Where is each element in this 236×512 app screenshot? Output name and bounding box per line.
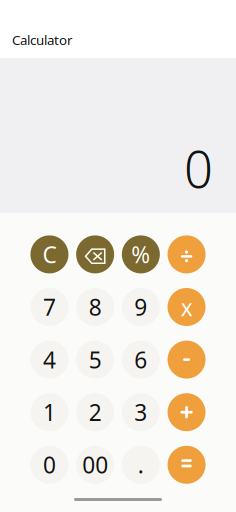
staticText: X bbox=[181, 297, 192, 321]
staticText: . bbox=[138, 450, 144, 480]
button[interactable]: X bbox=[168, 288, 206, 326]
staticText: 5 bbox=[89, 344, 102, 375]
button[interactable]: Backspace bbox=[76, 235, 114, 273]
button[interactable]: 00 bbox=[76, 446, 114, 484]
button[interactable]: Equals bbox=[168, 446, 206, 484]
staticText: 4 bbox=[43, 344, 56, 375]
button[interactable]: 6 bbox=[122, 341, 160, 379]
staticText: 8 bbox=[89, 292, 102, 322]
staticText: 7 bbox=[43, 292, 56, 322]
staticText: % bbox=[131, 239, 150, 269]
staticText: 1 bbox=[43, 397, 56, 427]
button[interactable]: 0 bbox=[30, 446, 68, 484]
button[interactable]: Plus bbox=[168, 393, 206, 431]
staticText: C bbox=[42, 239, 56, 269]
staticText: 0 bbox=[43, 450, 56, 480]
button[interactable]: C bbox=[30, 235, 68, 273]
button[interactable]: % bbox=[122, 235, 160, 273]
button[interactable]: 2 bbox=[76, 393, 114, 431]
button[interactable]: 4 bbox=[30, 341, 68, 379]
button[interactable]: Divide bbox=[168, 235, 206, 273]
button[interactable]: 7 bbox=[30, 288, 68, 326]
button[interactable]: 9 bbox=[122, 288, 160, 326]
button[interactable]: Minus bbox=[168, 341, 206, 379]
button[interactable]: 3 bbox=[122, 393, 160, 431]
staticText: Calculator bbox=[12, 31, 73, 49]
button[interactable]: 5 bbox=[76, 341, 114, 379]
button[interactable]: 1 bbox=[30, 393, 68, 431]
staticText: 00 bbox=[82, 450, 108, 480]
staticText: 0 bbox=[184, 135, 213, 202]
button[interactable]: . bbox=[122, 446, 160, 484]
staticText: 6 bbox=[134, 344, 147, 375]
staticText: 3 bbox=[134, 397, 147, 427]
button[interactable]: 8 bbox=[76, 288, 114, 326]
staticText: 2 bbox=[89, 397, 102, 427]
staticText: 9 bbox=[134, 292, 147, 322]
